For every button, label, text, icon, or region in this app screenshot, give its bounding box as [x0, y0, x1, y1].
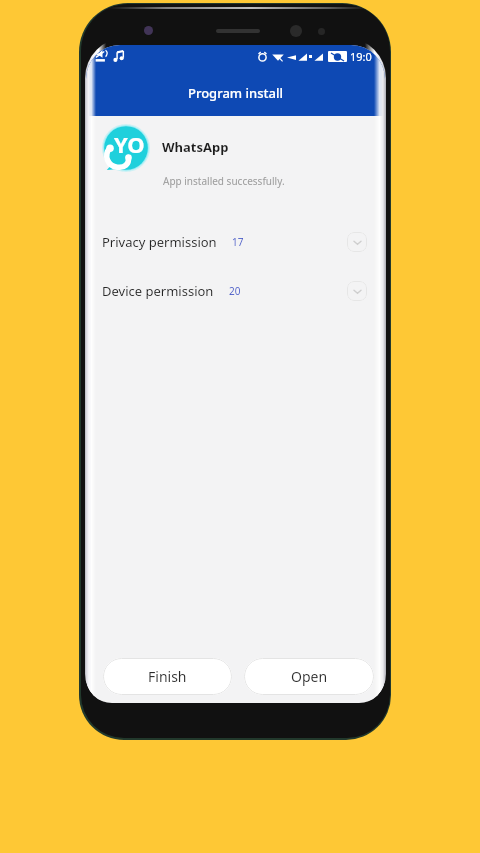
button[interactable]: Open: [244, 658, 374, 695]
staticText: 20: [229, 284, 241, 298]
staticText: 19:0: [350, 49, 372, 64]
staticText: App installed successfully.: [163, 174, 285, 188]
staticText: 17: [232, 235, 244, 249]
staticText: Open: [291, 667, 328, 686]
button[interactable]: Finish: [103, 658, 232, 695]
staticText: WhatsApp: [162, 138, 229, 156]
staticText: Privacy permission: [102, 233, 217, 251]
button[interactable]: Device permission: [86, 266, 385, 315]
button[interactable]: Expand Device permission: [347, 281, 367, 301]
staticText: Device permission: [102, 282, 214, 300]
staticText: Program install: [188, 84, 283, 102]
button[interactable]: Expand Privacy permission: [347, 232, 367, 252]
button[interactable]: Privacy permission: [86, 217, 385, 266]
staticText: YO: [114, 129, 145, 159]
staticText: Finish: [148, 667, 187, 686]
